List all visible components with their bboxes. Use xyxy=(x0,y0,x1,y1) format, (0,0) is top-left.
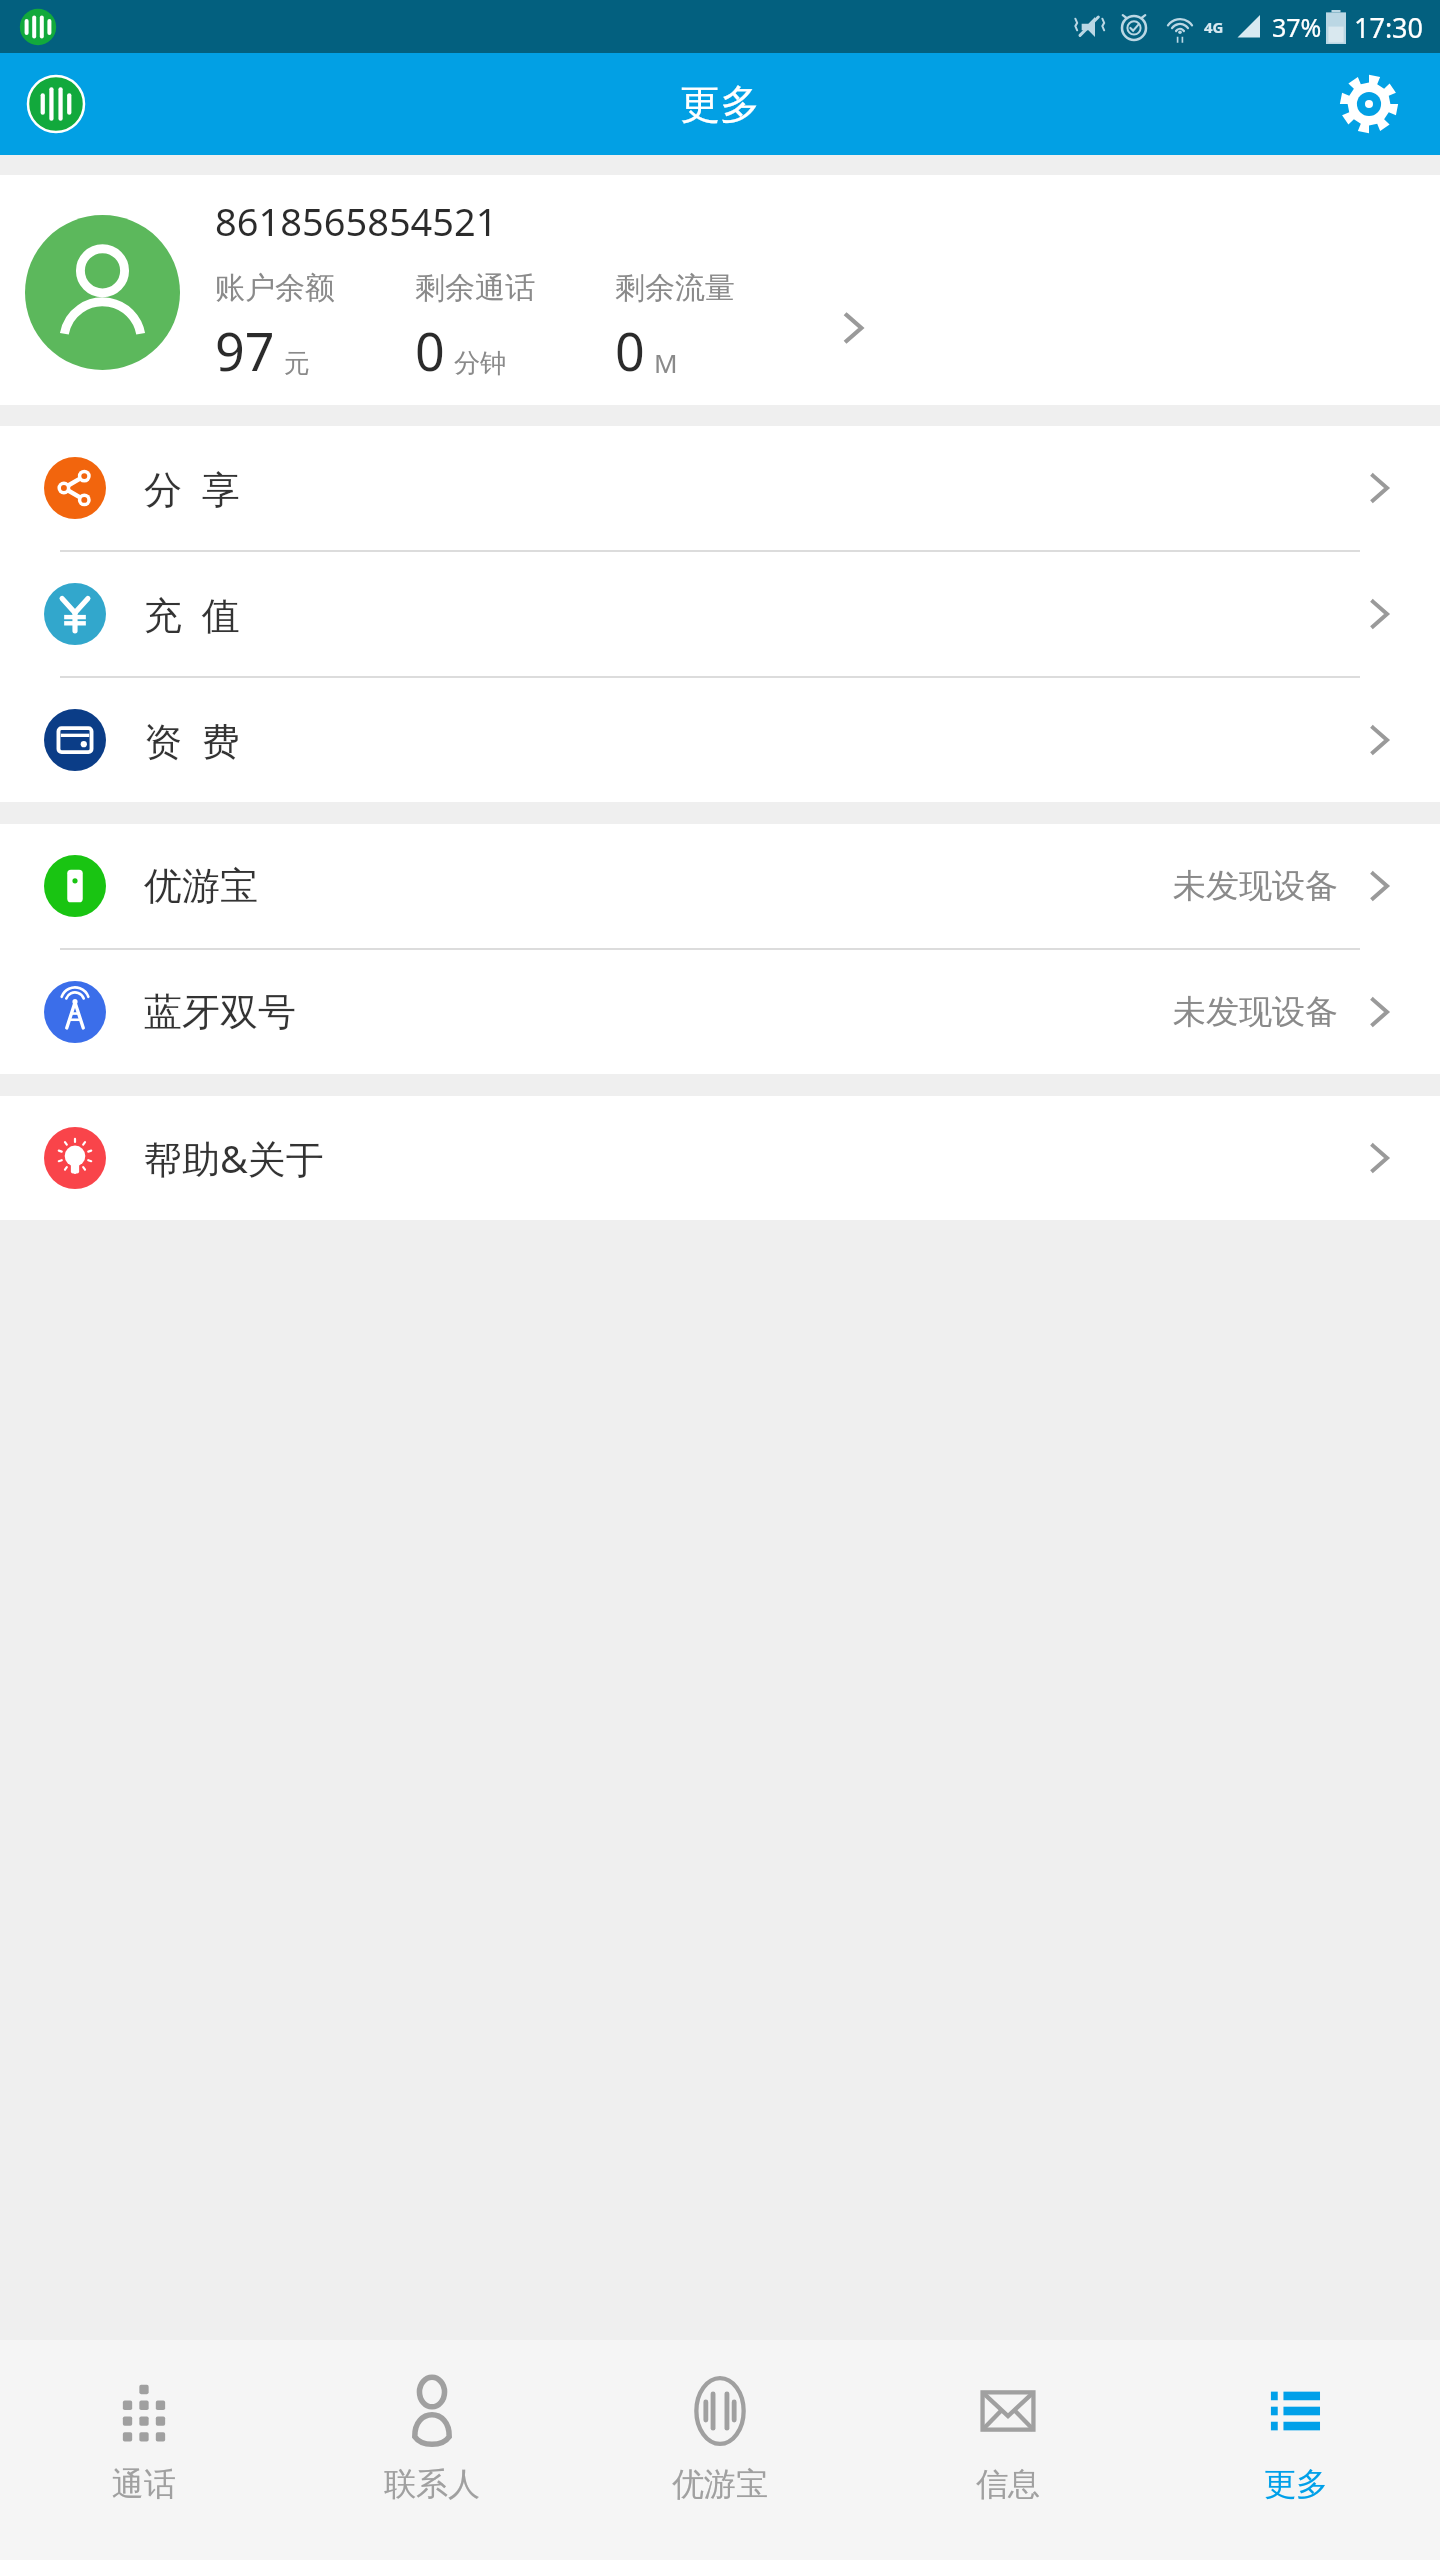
button[interactable]: 通话 xyxy=(0,2340,288,2560)
button[interactable]: 帮助&关于 xyxy=(0,1096,1440,1220)
button[interactable]: 信息 xyxy=(864,2340,1152,2560)
staticText: 优游宝 xyxy=(144,862,258,910)
staticText: 4G xyxy=(1204,17,1224,37)
button[interactable]: Logo xyxy=(20,68,92,140)
button[interactable]: 联系人 xyxy=(288,2340,576,2560)
staticText: 账户余额 xyxy=(215,269,335,307)
staticText: 17:30 xyxy=(1354,9,1424,46)
button[interactable]: 蓝牙双号 xyxy=(0,950,1440,1074)
staticText: 更多 xyxy=(1264,2464,1328,2504)
staticText: 0 xyxy=(415,315,445,386)
staticText: 未发现设备 xyxy=(1173,991,1338,1033)
staticText: 蓝牙双号 xyxy=(144,988,296,1036)
staticText: 元 xyxy=(284,347,310,380)
staticText: 分钟 xyxy=(454,347,506,380)
button[interactable]: 优游宝 xyxy=(576,2340,864,2560)
button[interactable]: 优游宝 xyxy=(0,824,1440,948)
staticText: 帮助&关于 xyxy=(144,1132,324,1184)
staticText: 8618565854521 xyxy=(215,195,498,247)
staticText: 通话 xyxy=(112,2464,176,2504)
button[interactable]: Settings xyxy=(1328,63,1410,145)
staticText: 优游宝 xyxy=(672,2464,768,2504)
button[interactable]: 更多 xyxy=(1152,2340,1440,2560)
staticText: M xyxy=(654,345,678,380)
staticText: 信息 xyxy=(976,2464,1040,2504)
button[interactable]: 分 享 xyxy=(0,426,1440,550)
staticText: 37% xyxy=(1272,10,1322,44)
staticText: 充 值 xyxy=(144,588,240,640)
staticText: 更多 xyxy=(680,79,760,129)
button[interactable]: 8618565854521 xyxy=(0,175,1440,405)
staticText: 联系人 xyxy=(384,2464,480,2504)
staticText: 分 享 xyxy=(144,462,240,514)
staticText: 剩余通话 xyxy=(415,269,535,307)
staticText: 资 费 xyxy=(144,714,240,766)
staticText: 97 xyxy=(215,315,275,386)
staticText: 0 xyxy=(615,315,645,386)
button[interactable]: 充 值 xyxy=(0,552,1440,676)
staticText: 未发现设备 xyxy=(1173,865,1338,907)
staticText: 剩余流量 xyxy=(615,269,735,307)
button[interactable]: 资 费 xyxy=(0,678,1440,802)
